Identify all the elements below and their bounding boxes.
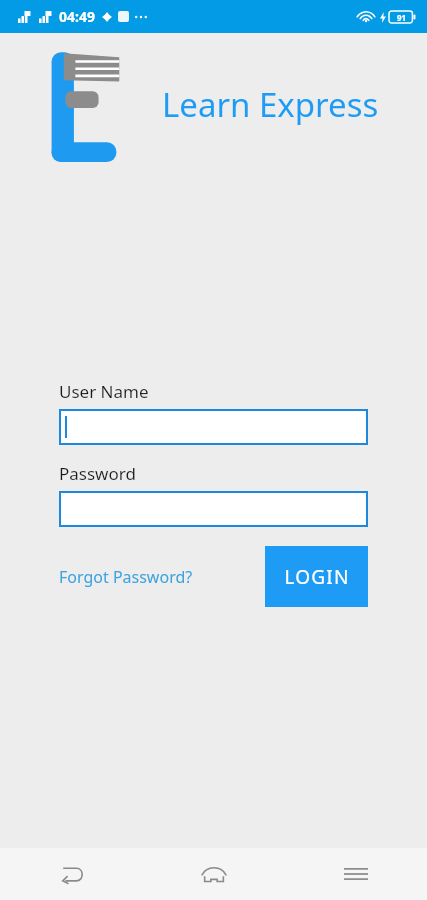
staticText: 04:49 <box>59 7 95 26</box>
staticText: Password <box>59 462 136 485</box>
button[interactable]: Home <box>143 848 285 900</box>
button[interactable] <box>59 409 368 445</box>
button[interactable]: LOGIN <box>265 546 368 607</box>
button[interactable]: Menu <box>285 848 427 900</box>
staticText: Learn Express <box>162 82 379 127</box>
button[interactable]: Back <box>0 848 143 900</box>
button[interactable] <box>59 491 368 527</box>
staticText: LOGIN <box>284 564 350 590</box>
staticText: Forgot Password? <box>59 566 193 588</box>
staticText: User Name <box>59 380 149 403</box>
button[interactable]: Forgot Password? <box>59 560 193 594</box>
staticText: 91 <box>397 12 407 23</box>
